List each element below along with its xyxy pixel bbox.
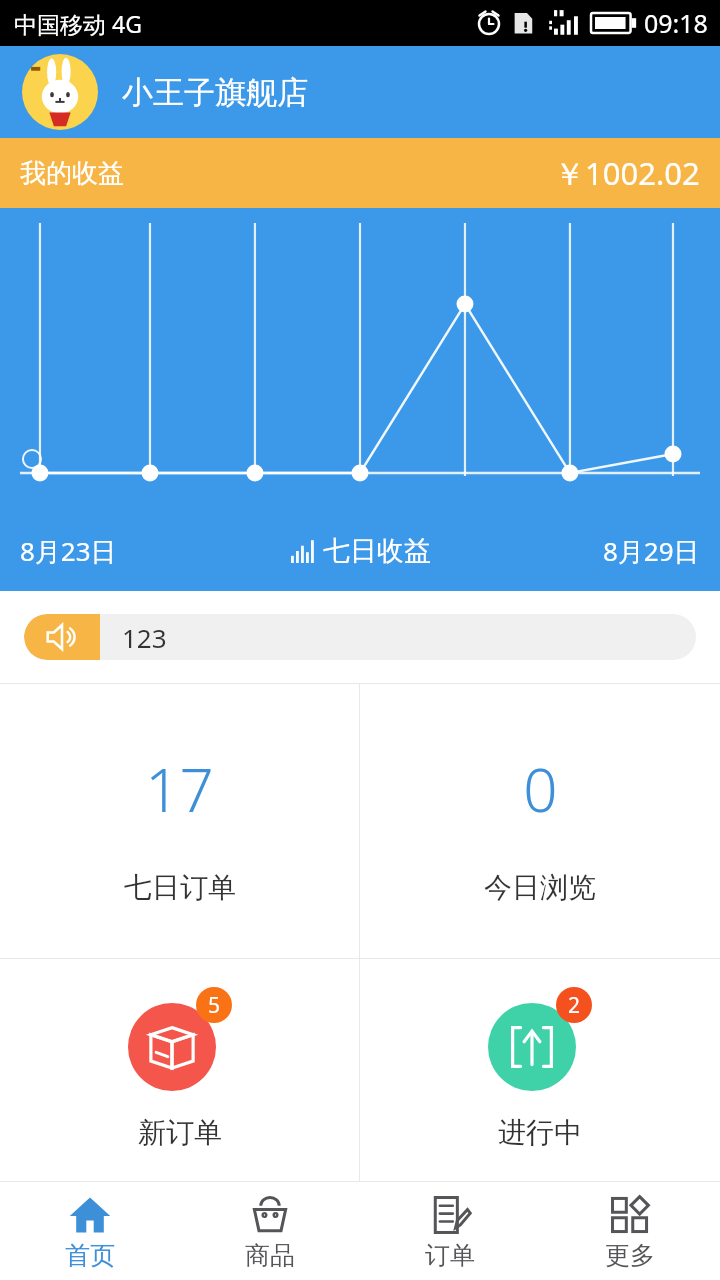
staticText: 8月23日 (20, 533, 117, 569)
button[interactable]: 商品 (180, 1182, 360, 1280)
staticText: ￥1002.02 (554, 152, 700, 194)
button[interactable]: 首页 (0, 1182, 180, 1280)
button[interactable]: 更多 (540, 1182, 720, 1280)
staticText: 09:18 (644, 6, 708, 40)
button[interactable]: 123 (24, 614, 696, 660)
staticText: 2 (568, 991, 581, 1020)
button[interactable]: 0 (360, 684, 720, 958)
button[interactable]: 17 (0, 684, 359, 958)
staticText: 进行中 (498, 1115, 582, 1150)
staticText: 中国移动 4G (14, 8, 142, 39)
staticText: 七日订单 (124, 870, 236, 905)
button[interactable]: 2 (360, 959, 720, 1181)
staticText: 商品 (245, 1240, 295, 1271)
staticText: 17 (145, 748, 214, 830)
staticText: 七日收益 (323, 534, 431, 568)
button[interactable]: 小王子旗舰店 (0, 46, 720, 138)
staticText: 今日浏览 (484, 870, 596, 905)
staticText: 0 (523, 748, 558, 830)
staticText: 订单 (425, 1240, 475, 1271)
staticText: 8月29日 (603, 533, 700, 569)
button[interactable]: 5 (0, 959, 359, 1181)
button[interactable]: 我的收益 (0, 138, 720, 208)
staticText: 5 (208, 991, 221, 1020)
staticText: 123 (122, 620, 167, 655)
staticText: 更多 (605, 1240, 655, 1271)
staticText: 小王子旗舰店 (122, 73, 308, 112)
staticText: 首页 (65, 1240, 115, 1271)
staticText: 我的收益 (20, 157, 124, 190)
staticText: 新订单 (138, 1115, 222, 1150)
button[interactable]: 订单 (360, 1182, 540, 1280)
